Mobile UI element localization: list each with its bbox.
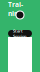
- staticText: Start Session: [13, 28, 27, 39]
- staticText: Pet Training: [8, 0, 23, 18]
